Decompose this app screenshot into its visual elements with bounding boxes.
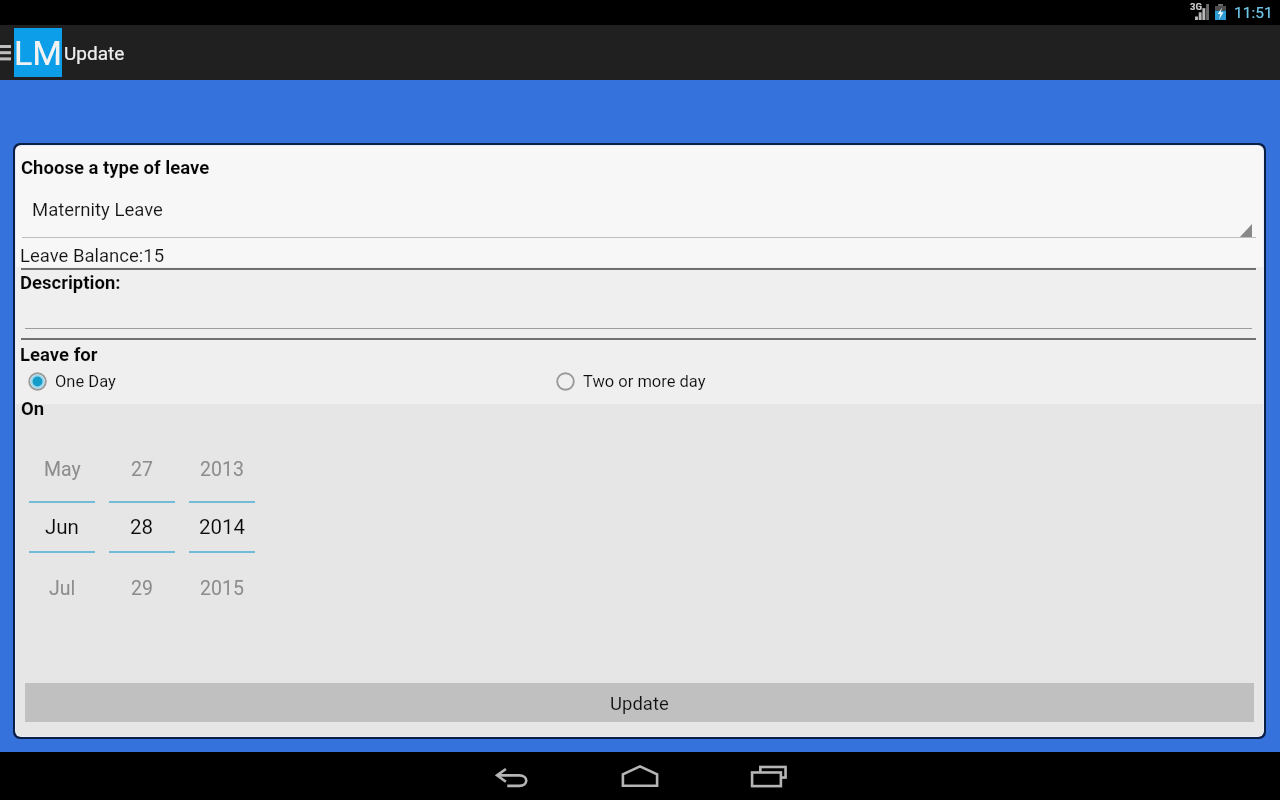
staticText: 29 <box>131 577 153 600</box>
staticText: 11:51 <box>1234 4 1273 22</box>
staticText: Update <box>610 693 669 715</box>
button[interactable]: 27 <box>109 439 175 499</box>
button[interactable]: Open navigation drawer <box>0 25 11 80</box>
staticText: 3G <box>1190 1 1202 12</box>
button[interactable] <box>16 298 1263 329</box>
button[interactable]: Jun <box>29 503 95 551</box>
button[interactable]: Two or more day <box>556 371 706 391</box>
staticText: Jun <box>45 515 79 539</box>
button[interactable]: 2014 <box>189 503 255 551</box>
button[interactable]: Home <box>592 752 688 800</box>
button[interactable]: Back <box>464 752 560 800</box>
staticText: 28 <box>130 515 154 539</box>
staticText: Choose a type of leave <box>21 157 210 179</box>
staticText: May <box>44 458 81 481</box>
staticText: Jul <box>49 577 76 600</box>
staticText: LM <box>14 33 62 73</box>
staticText: 2013 <box>200 458 244 481</box>
button[interactable]: Jul <box>29 558 95 618</box>
button[interactable]: Update <box>25 683 1254 722</box>
staticText: Leave Balance:15 <box>20 245 165 267</box>
button[interactable]: May <box>29 439 95 499</box>
staticText: Description: <box>20 272 121 294</box>
staticText: Maternity Leave <box>32 199 163 221</box>
button[interactable]: Maternity Leave <box>16 182 1263 238</box>
staticText: Update <box>64 42 125 64</box>
staticText: Leave for <box>20 344 98 366</box>
button[interactable]: 29 <box>109 558 175 618</box>
staticText: Two or more day <box>583 372 706 391</box>
button[interactable]: 2013 <box>189 439 255 499</box>
staticText: On <box>21 398 45 420</box>
button[interactable]: Recent apps <box>721 752 817 800</box>
button[interactable]: 28 <box>109 503 175 551</box>
staticText: 2014 <box>199 515 246 539</box>
staticText: 2015 <box>200 577 244 600</box>
staticText: One Day <box>55 372 116 391</box>
staticText: 27 <box>131 458 153 481</box>
button[interactable]: 2015 <box>189 558 255 618</box>
button[interactable]: One Day <box>28 371 116 391</box>
